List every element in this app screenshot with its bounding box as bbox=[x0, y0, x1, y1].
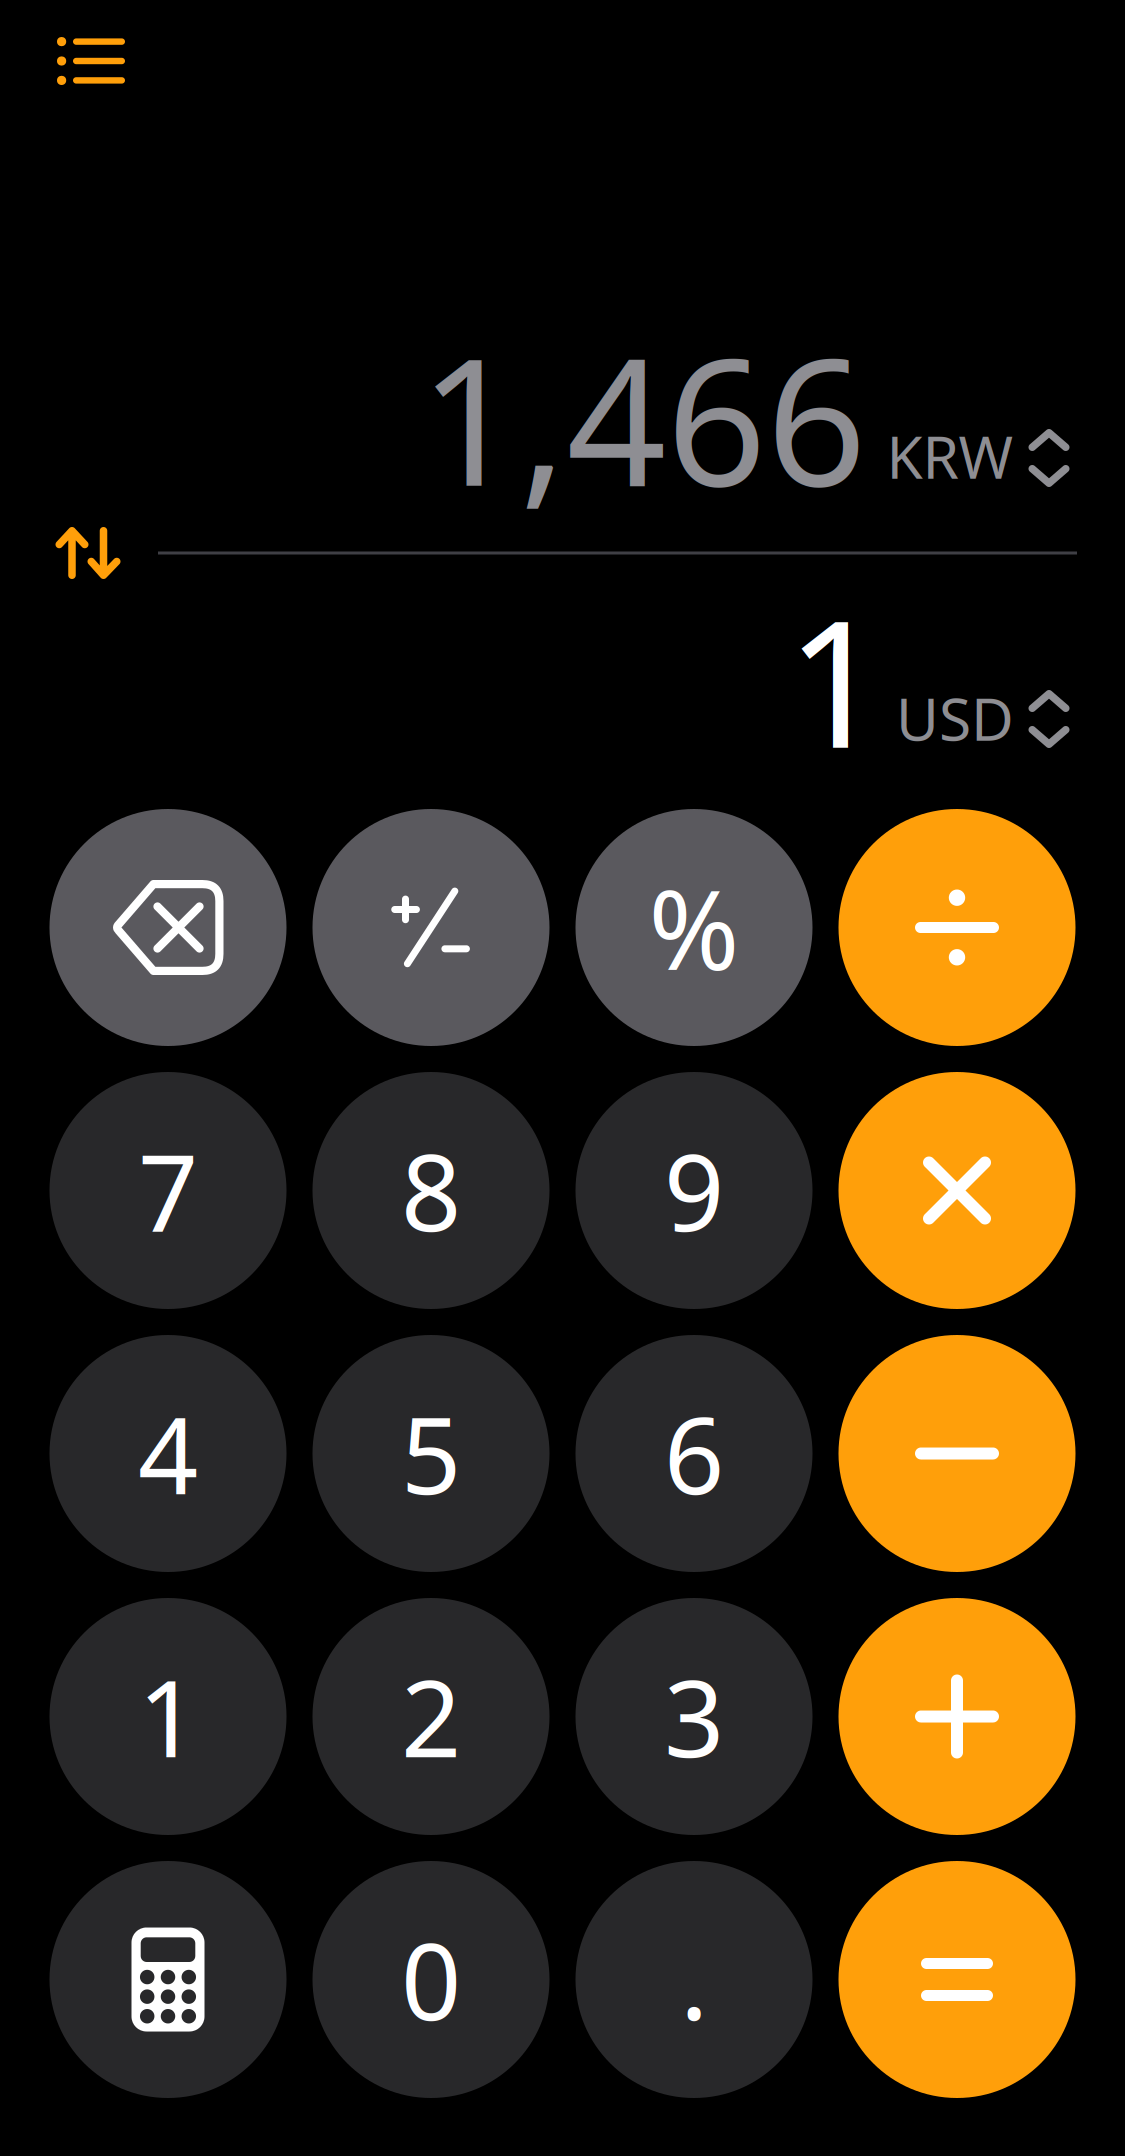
button[interactable]: Change entered currency bbox=[1014, 676, 1083, 762]
button[interactable]: 9 bbox=[575, 1072, 812, 1309]
staticText: 1 bbox=[138, 1647, 198, 1786]
button[interactable]: Subtract bbox=[838, 1335, 1075, 1572]
staticText: 0 bbox=[401, 1910, 461, 2049]
button[interactable]: . bbox=[575, 1861, 812, 2098]
button[interactable]: Divide bbox=[838, 809, 1075, 1046]
button[interactable]: % bbox=[575, 809, 812, 1046]
button[interactable]: Change converted currency bbox=[1014, 415, 1083, 501]
button[interactable]: 6 bbox=[575, 1335, 812, 1572]
staticText: KRW bbox=[886, 417, 1013, 495]
button[interactable]: 2 bbox=[312, 1598, 549, 1835]
button[interactable]: Calculator bbox=[49, 1861, 286, 2098]
button[interactable]: Equals bbox=[838, 1861, 1075, 2098]
staticText: 1,466 bbox=[419, 302, 866, 534]
staticText: 8 bbox=[401, 1121, 461, 1260]
staticText: 7 bbox=[138, 1121, 198, 1260]
staticText: 3 bbox=[664, 1647, 724, 1786]
button[interactable]: 4 bbox=[49, 1335, 286, 1572]
button[interactable]: Swap currencies bbox=[39, 511, 136, 595]
staticText: . bbox=[680, 1910, 708, 2049]
button[interactable]: History bbox=[41, 21, 141, 101]
button[interactable]: Delete bbox=[49, 809, 286, 1046]
staticText: 5 bbox=[401, 1384, 461, 1523]
button[interactable]: Add bbox=[838, 1598, 1075, 1835]
button[interactable]: 8 bbox=[312, 1072, 549, 1309]
button[interactable]: 0 bbox=[312, 1861, 549, 2098]
staticText: 2 bbox=[401, 1647, 461, 1786]
staticText: % bbox=[648, 855, 739, 1000]
button[interactable]: Multiply bbox=[838, 1072, 1075, 1309]
staticText: USD bbox=[896, 679, 1014, 757]
staticText: 9 bbox=[664, 1121, 724, 1260]
button[interactable]: 5 bbox=[312, 1335, 549, 1572]
staticText: 1 bbox=[786, 564, 886, 796]
button[interactable]: Toggle sign bbox=[312, 809, 549, 1046]
button[interactable]: 3 bbox=[575, 1598, 812, 1835]
button[interactable]: 7 bbox=[49, 1072, 286, 1309]
button[interactable]: 1 bbox=[49, 1598, 286, 1835]
staticText: 6 bbox=[664, 1384, 724, 1523]
staticText: 4 bbox=[138, 1384, 198, 1523]
